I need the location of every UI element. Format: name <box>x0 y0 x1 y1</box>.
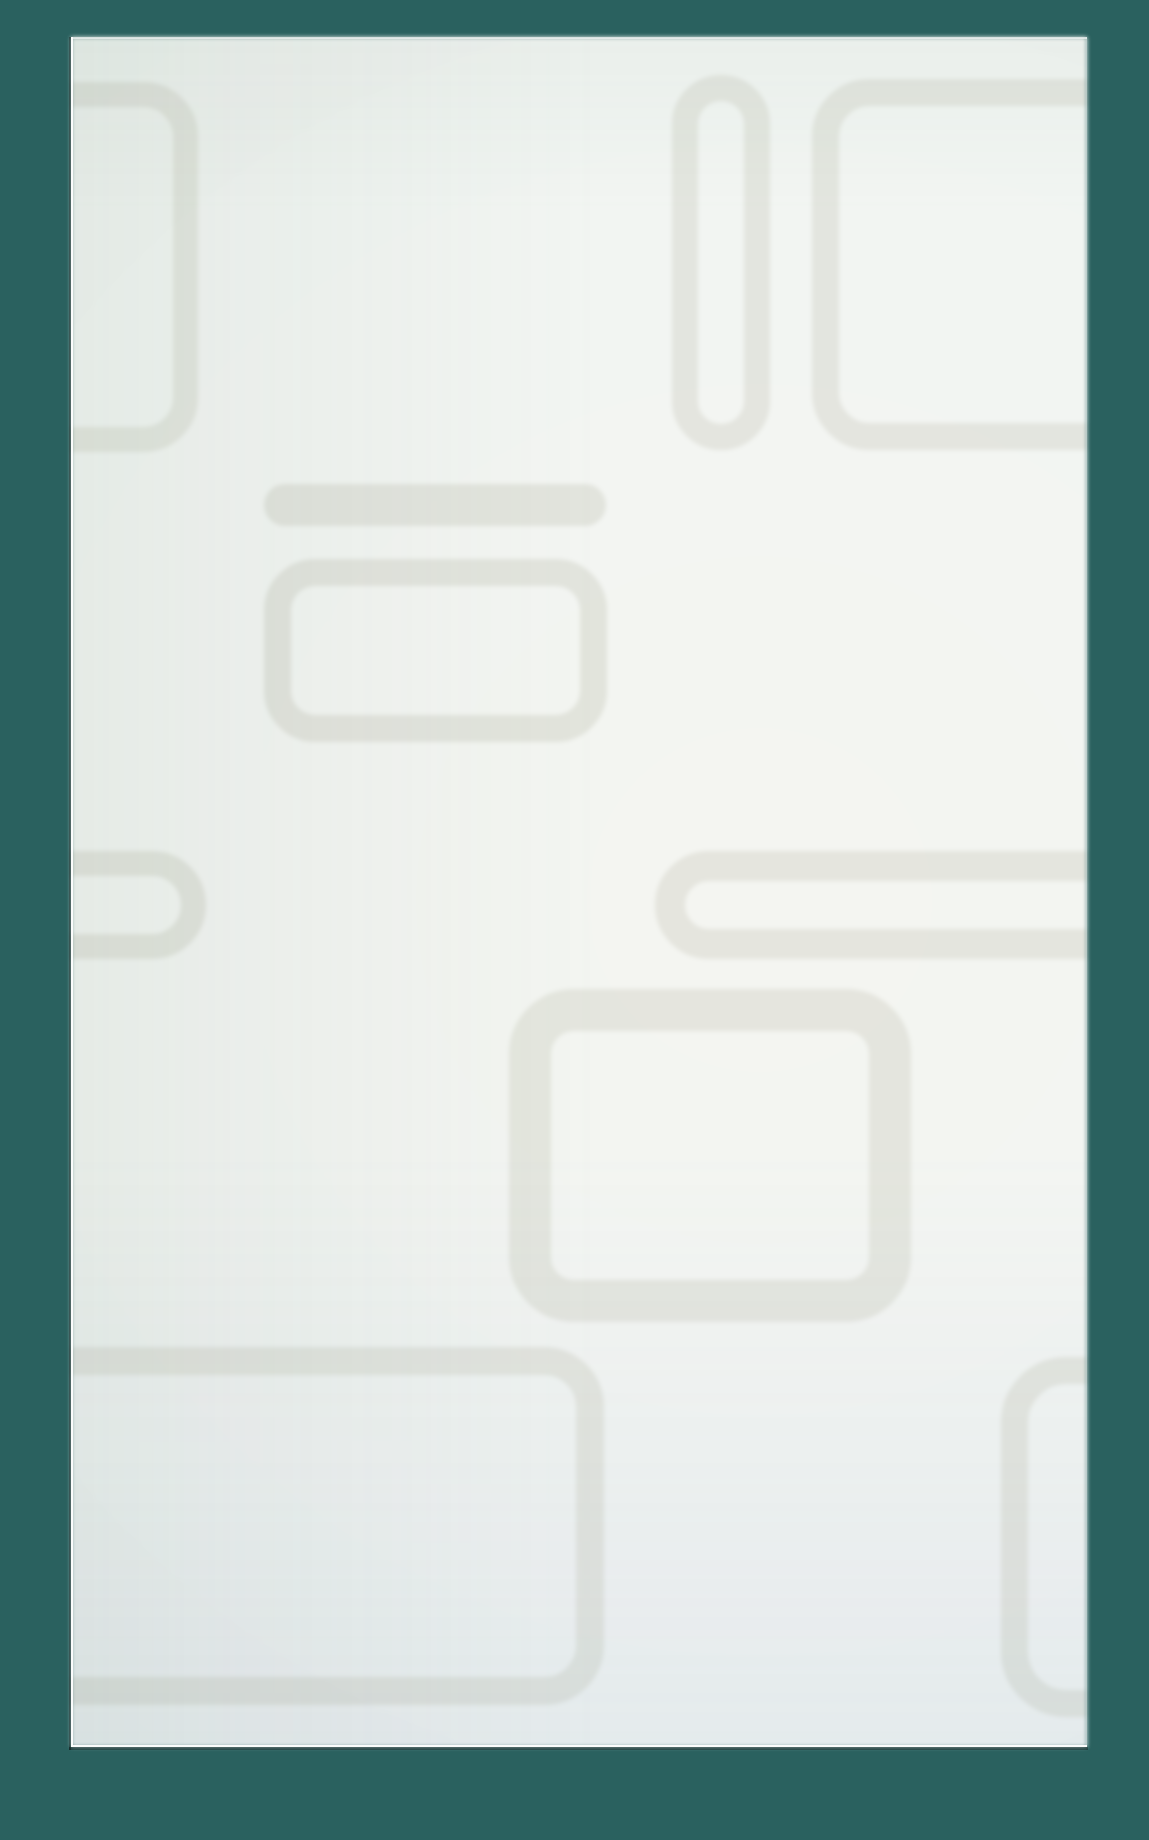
button[interactable]: Artwork, mid-century pattern <box>71 37 1087 1747</box>
